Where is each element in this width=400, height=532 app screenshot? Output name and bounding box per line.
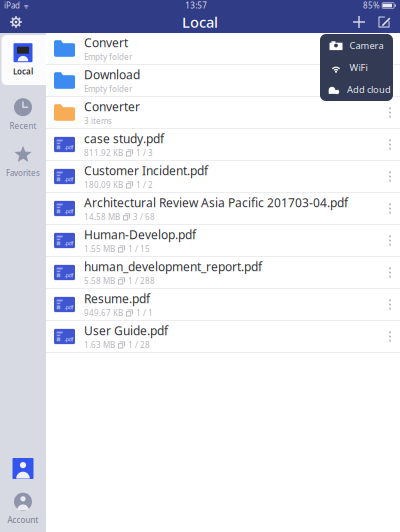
button[interactable]: .pdf [46,257,400,289]
button[interactable]: Profile [0,451,46,486]
staticText: Add cloud [347,83,391,96]
staticText: .pdf [64,144,73,151]
staticText: .pdf [64,304,73,311]
staticText: 1.55 MB [84,244,115,254]
staticText: .pdf [64,208,73,215]
staticText: Architectural Review Asia Pacific 201703… [84,195,348,211]
staticText: Favorites [6,168,40,178]
button[interactable]: Local [1,36,44,83]
staticText: 3 / 68 [133,212,155,222]
staticText: 13:57 [185,0,207,11]
staticText: Local [13,66,33,77]
staticText: iPad [4,0,20,11]
staticText: 14.58 MB [84,212,120,222]
button[interactable]: Camera [322,34,395,56]
staticText: 811.92 KB [84,148,123,158]
button[interactable]: .pdf [46,289,400,321]
staticText: 5.58 MB [84,276,115,286]
button[interactable]: .pdf [46,161,400,193]
staticText: Converter [84,99,140,115]
button[interactable]: Settings [3,11,29,33]
button[interactable]: Download [46,65,400,97]
staticText: .pdf [64,336,73,343]
staticText: .pdf [64,176,73,183]
staticText: 1 / 28 [128,340,150,350]
staticText: Account [7,515,38,525]
button[interactable]: Account [0,486,46,532]
staticText: 1 / 288 [128,276,155,286]
staticText: Empty folder [84,52,132,62]
staticText: User Guide.pdf [84,323,168,339]
button[interactable]: .pdf [46,225,400,257]
staticText: Resume.pdf [84,291,150,307]
staticText: 1.63 MB [84,340,115,350]
staticText: 1 / 1 [136,308,153,318]
staticText: Local [182,12,218,32]
staticText: Convert [84,35,128,51]
staticText: .pdf [64,240,73,247]
button[interactable]: .pdf [46,193,400,225]
staticText: 1 / 2 [136,180,153,190]
button[interactable]: Compose [371,11,397,33]
staticText: 180.09 KB [84,180,123,190]
staticText: 85% [363,0,380,11]
button[interactable]: .pdf [46,129,400,161]
button[interactable]: Add cloud [320,78,398,100]
staticText: human_development_report.pdf [84,259,262,275]
staticText: Download [84,67,140,83]
button[interactable]: Converter [46,97,400,129]
button[interactable]: .pdf [46,321,400,353]
staticText: Empty folder [84,84,132,94]
staticText: Recent [9,121,36,131]
staticText: case study.pdf [84,131,164,147]
staticText: 1 / 3 [136,148,153,158]
staticText: 3 items [84,116,112,126]
button[interactable]: Recent [1,91,44,138]
button[interactable]: Convert [46,33,400,65]
staticText: WiFi [349,61,367,74]
staticText: .pdf [64,272,73,279]
button[interactable]: Add [347,11,371,33]
staticText: Customer Incident.pdf [84,163,208,179]
staticText: Camera [349,39,383,52]
button[interactable]: Favorites [1,138,44,185]
button[interactable]: WiFi [322,56,395,78]
staticText: 1 / 15 [128,244,150,254]
staticText: Human-Develop.pdf [84,227,196,243]
staticText: 949.67 KB [84,308,123,318]
